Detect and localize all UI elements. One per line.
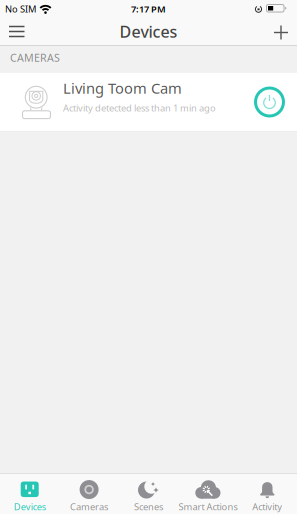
staticText: Smart Actions	[178, 501, 237, 513]
staticText: Devices	[119, 21, 177, 42]
staticText: Cameras	[70, 501, 108, 513]
button[interactable]: Power	[254, 86, 285, 117]
button[interactable]: Smart Actions	[178, 473, 238, 513]
staticText: Scenes	[134, 501, 163, 513]
staticText: 7:17 PM	[131, 3, 166, 15]
staticText: Living Toom Cam	[63, 78, 182, 98]
staticText: CAMERAS	[10, 51, 60, 65]
button[interactable]: Scenes	[119, 473, 178, 513]
button[interactable]: Cameras	[59, 473, 119, 513]
button[interactable]: Menu	[0, 18, 24, 45]
staticText: Activity	[252, 501, 282, 513]
staticText: No SIM	[5, 3, 36, 15]
button[interactable]: Living Toom Cam	[0, 72, 297, 132]
staticText: Activity detected less than 1 min ago	[63, 102, 216, 114]
button[interactable]: Add Device	[274, 18, 297, 45]
button[interactable]: Activity	[238, 473, 297, 513]
staticText: Devices	[14, 501, 46, 513]
button[interactable]: Devices	[0, 473, 59, 513]
